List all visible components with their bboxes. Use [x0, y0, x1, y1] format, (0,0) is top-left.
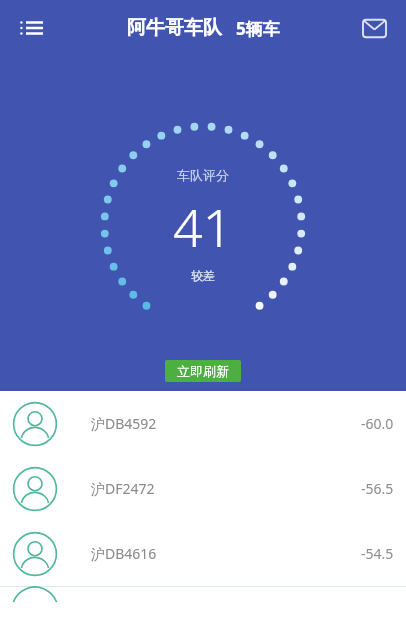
staticText: 阿牛哥车队: [127, 16, 222, 40]
staticText: 41: [173, 191, 233, 262]
button[interactable]: 沪DF2472: [0, 456, 406, 521]
staticText: 沪DB4592: [91, 414, 157, 433]
staticText: 车队评分: [177, 167, 229, 183]
button[interactable]: 沪DB4592: [0, 391, 406, 456]
button[interactable]: 沪DB4616: [0, 521, 406, 586]
staticText: 沪DF2472: [91, 479, 155, 498]
staticText: -54.5: [361, 544, 394, 563]
button[interactable]: 立即刷新: [165, 360, 241, 382]
staticText: -56.5: [361, 479, 394, 498]
staticText: 较差: [191, 268, 215, 283]
staticText: -60.0: [361, 414, 394, 433]
button[interactable]: Menu: [10, 6, 54, 50]
staticText: 立即刷新: [177, 363, 229, 379]
staticText: 5辆车: [236, 17, 280, 40]
button[interactable]: Messages: [354, 8, 394, 48]
staticText: 沪DB4616: [91, 544, 157, 563]
